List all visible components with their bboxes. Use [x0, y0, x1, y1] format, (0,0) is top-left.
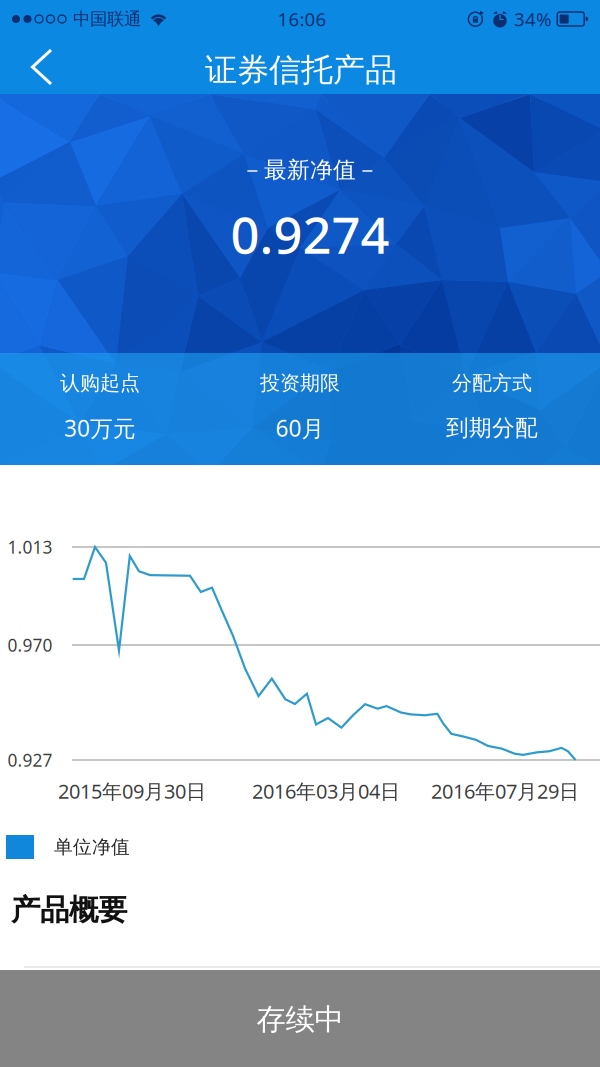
staticText: 存续中	[256, 1001, 343, 1037]
staticText: 中国联通	[73, 8, 141, 30]
staticText: 60月	[275, 413, 324, 443]
staticText: 认购起点	[60, 371, 140, 395]
button[interactable]: 返回	[3, 39, 77, 101]
staticText: 到期分配	[446, 414, 538, 442]
staticText: 16:06	[277, 7, 326, 31]
button[interactable]: 单位净值	[0, 823, 190, 871]
staticText: 2016年03月04日	[252, 778, 400, 804]
staticText: 证券信托产品	[205, 50, 397, 90]
staticText: 2016年07月29日	[431, 778, 579, 804]
staticText: 产品概要	[11, 892, 127, 928]
staticText: 投资期限	[260, 371, 340, 395]
button[interactable]: 存续中	[0, 970, 600, 1067]
staticText: 1.013	[7, 535, 52, 558]
staticText: 34%	[514, 7, 552, 31]
staticText: 分配方式	[452, 371, 532, 395]
staticText: 0.9274	[230, 200, 389, 268]
staticText: 单位净值	[54, 835, 130, 858]
staticText: 0.970	[7, 633, 52, 656]
staticText: 0.927	[7, 748, 52, 771]
staticText: 2015年09月30日	[58, 778, 206, 804]
staticText: 30万元	[64, 413, 136, 443]
staticText: －最新净值－	[241, 156, 379, 184]
